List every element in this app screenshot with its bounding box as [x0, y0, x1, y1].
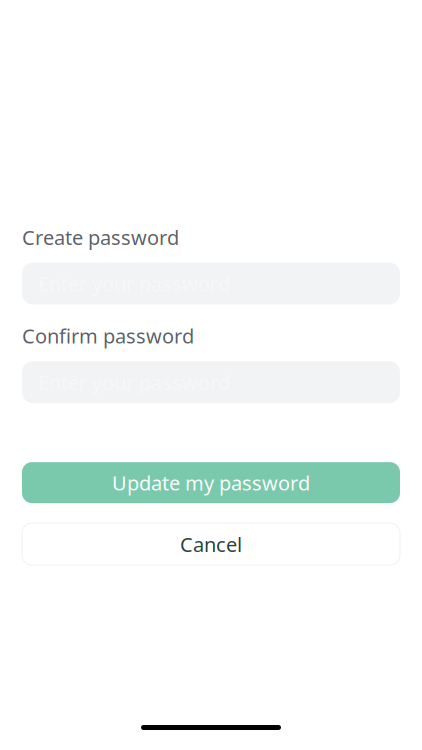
button[interactable]: Update my password	[22, 462, 400, 503]
staticText: Cancel	[180, 531, 242, 557]
staticText: Update my password	[112, 469, 310, 496]
button[interactable]: Cancel	[22, 523, 400, 565]
staticText: Confirm password	[22, 323, 194, 349]
staticText: Create password	[22, 224, 179, 251]
